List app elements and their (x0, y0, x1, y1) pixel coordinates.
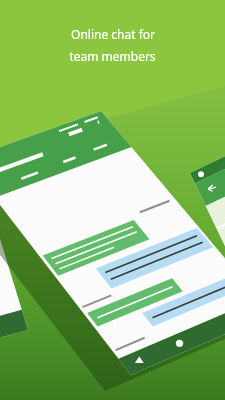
staticText: team members (69, 48, 156, 64)
staticText: Online chat for (71, 26, 155, 42)
